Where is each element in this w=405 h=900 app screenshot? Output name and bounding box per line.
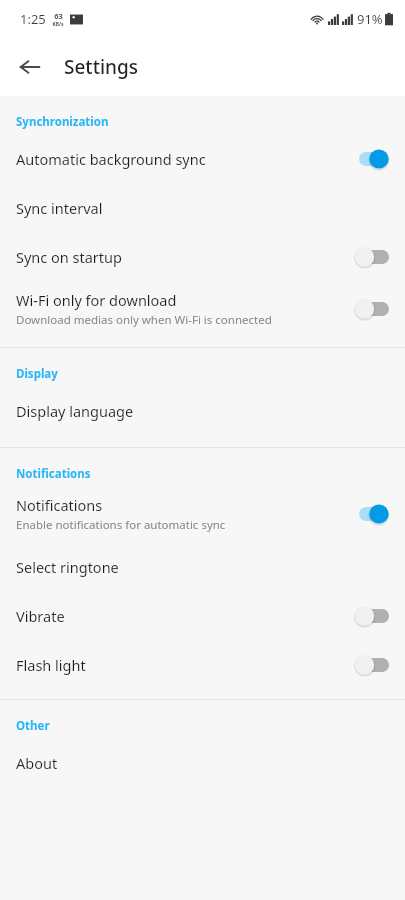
staticText: 1:25 bbox=[20, 10, 46, 28]
staticText: Settings bbox=[64, 54, 138, 80]
button[interactable]: Sync interval bbox=[0, 183, 405, 232]
staticText: 63 bbox=[54, 11, 63, 21]
button[interactable]: Select ringtone bbox=[0, 542, 405, 591]
staticText: Select ringtone bbox=[16, 557, 119, 577]
staticText: Synchronization bbox=[16, 114, 109, 130]
staticText: Other bbox=[16, 718, 50, 734]
button[interactable]: Back bbox=[8, 45, 52, 89]
button[interactable]: Off bbox=[355, 603, 389, 629]
staticText: KB/s bbox=[52, 21, 64, 28]
button[interactable]: Notifications bbox=[0, 486, 405, 542]
button[interactable]: Sync on startup bbox=[0, 232, 405, 281]
staticText: Display language bbox=[16, 401, 134, 421]
staticText: Wi-Fi only for download bbox=[16, 290, 177, 310]
button[interactable]: Flash light bbox=[0, 640, 405, 689]
staticText: Notifications bbox=[16, 466, 91, 482]
button[interactable]: About bbox=[0, 738, 405, 787]
staticText: Sync interval bbox=[16, 198, 103, 218]
staticText: Sync on startup bbox=[16, 247, 122, 267]
staticText: Flash light bbox=[16, 655, 86, 675]
button[interactable]: Automatic background sync bbox=[0, 134, 405, 183]
button[interactable]: Wi-Fi only for download bbox=[0, 281, 405, 337]
button[interactable]: Off bbox=[355, 244, 389, 270]
staticText: Display bbox=[16, 366, 58, 382]
staticText: Vibrate bbox=[16, 606, 65, 626]
staticText: Download medias only when Wi-Fi is conne… bbox=[16, 312, 272, 328]
button[interactable]: Display language bbox=[0, 386, 405, 435]
button[interactable]: On bbox=[355, 501, 389, 527]
staticText: Enable notifications for automatic sync bbox=[16, 517, 226, 533]
staticText: Notifications bbox=[16, 495, 103, 515]
button[interactable]: On bbox=[355, 146, 389, 172]
button[interactable]: Off bbox=[355, 652, 389, 678]
staticText: 91% bbox=[357, 10, 383, 28]
staticText: About bbox=[16, 753, 58, 773]
staticText: Automatic background sync bbox=[16, 149, 206, 169]
button[interactable]: Off bbox=[355, 296, 389, 322]
button[interactable]: Vibrate bbox=[0, 591, 405, 640]
